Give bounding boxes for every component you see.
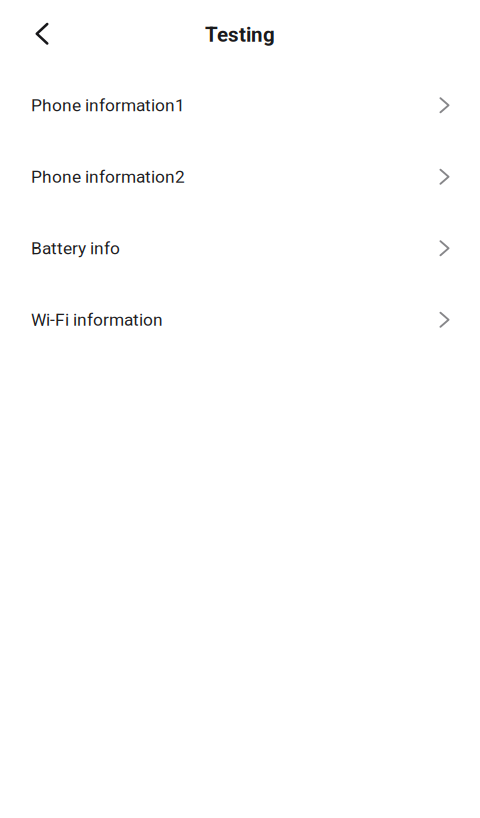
staticText: Testing — [205, 23, 275, 47]
staticText: Wi-Fi information — [31, 310, 163, 330]
staticText: Battery info — [31, 238, 120, 258]
button[interactable]: Wi-Fi information — [0, 284, 480, 355]
staticText: Phone information1 — [31, 95, 185, 115]
staticText: Phone information2 — [31, 167, 185, 187]
button[interactable]: Phone information2 — [0, 141, 480, 212]
button[interactable]: Battery info — [0, 212, 480, 284]
button[interactable]: Phone information1 — [0, 69, 480, 141]
button[interactable]: Back — [21, 10, 63, 58]
